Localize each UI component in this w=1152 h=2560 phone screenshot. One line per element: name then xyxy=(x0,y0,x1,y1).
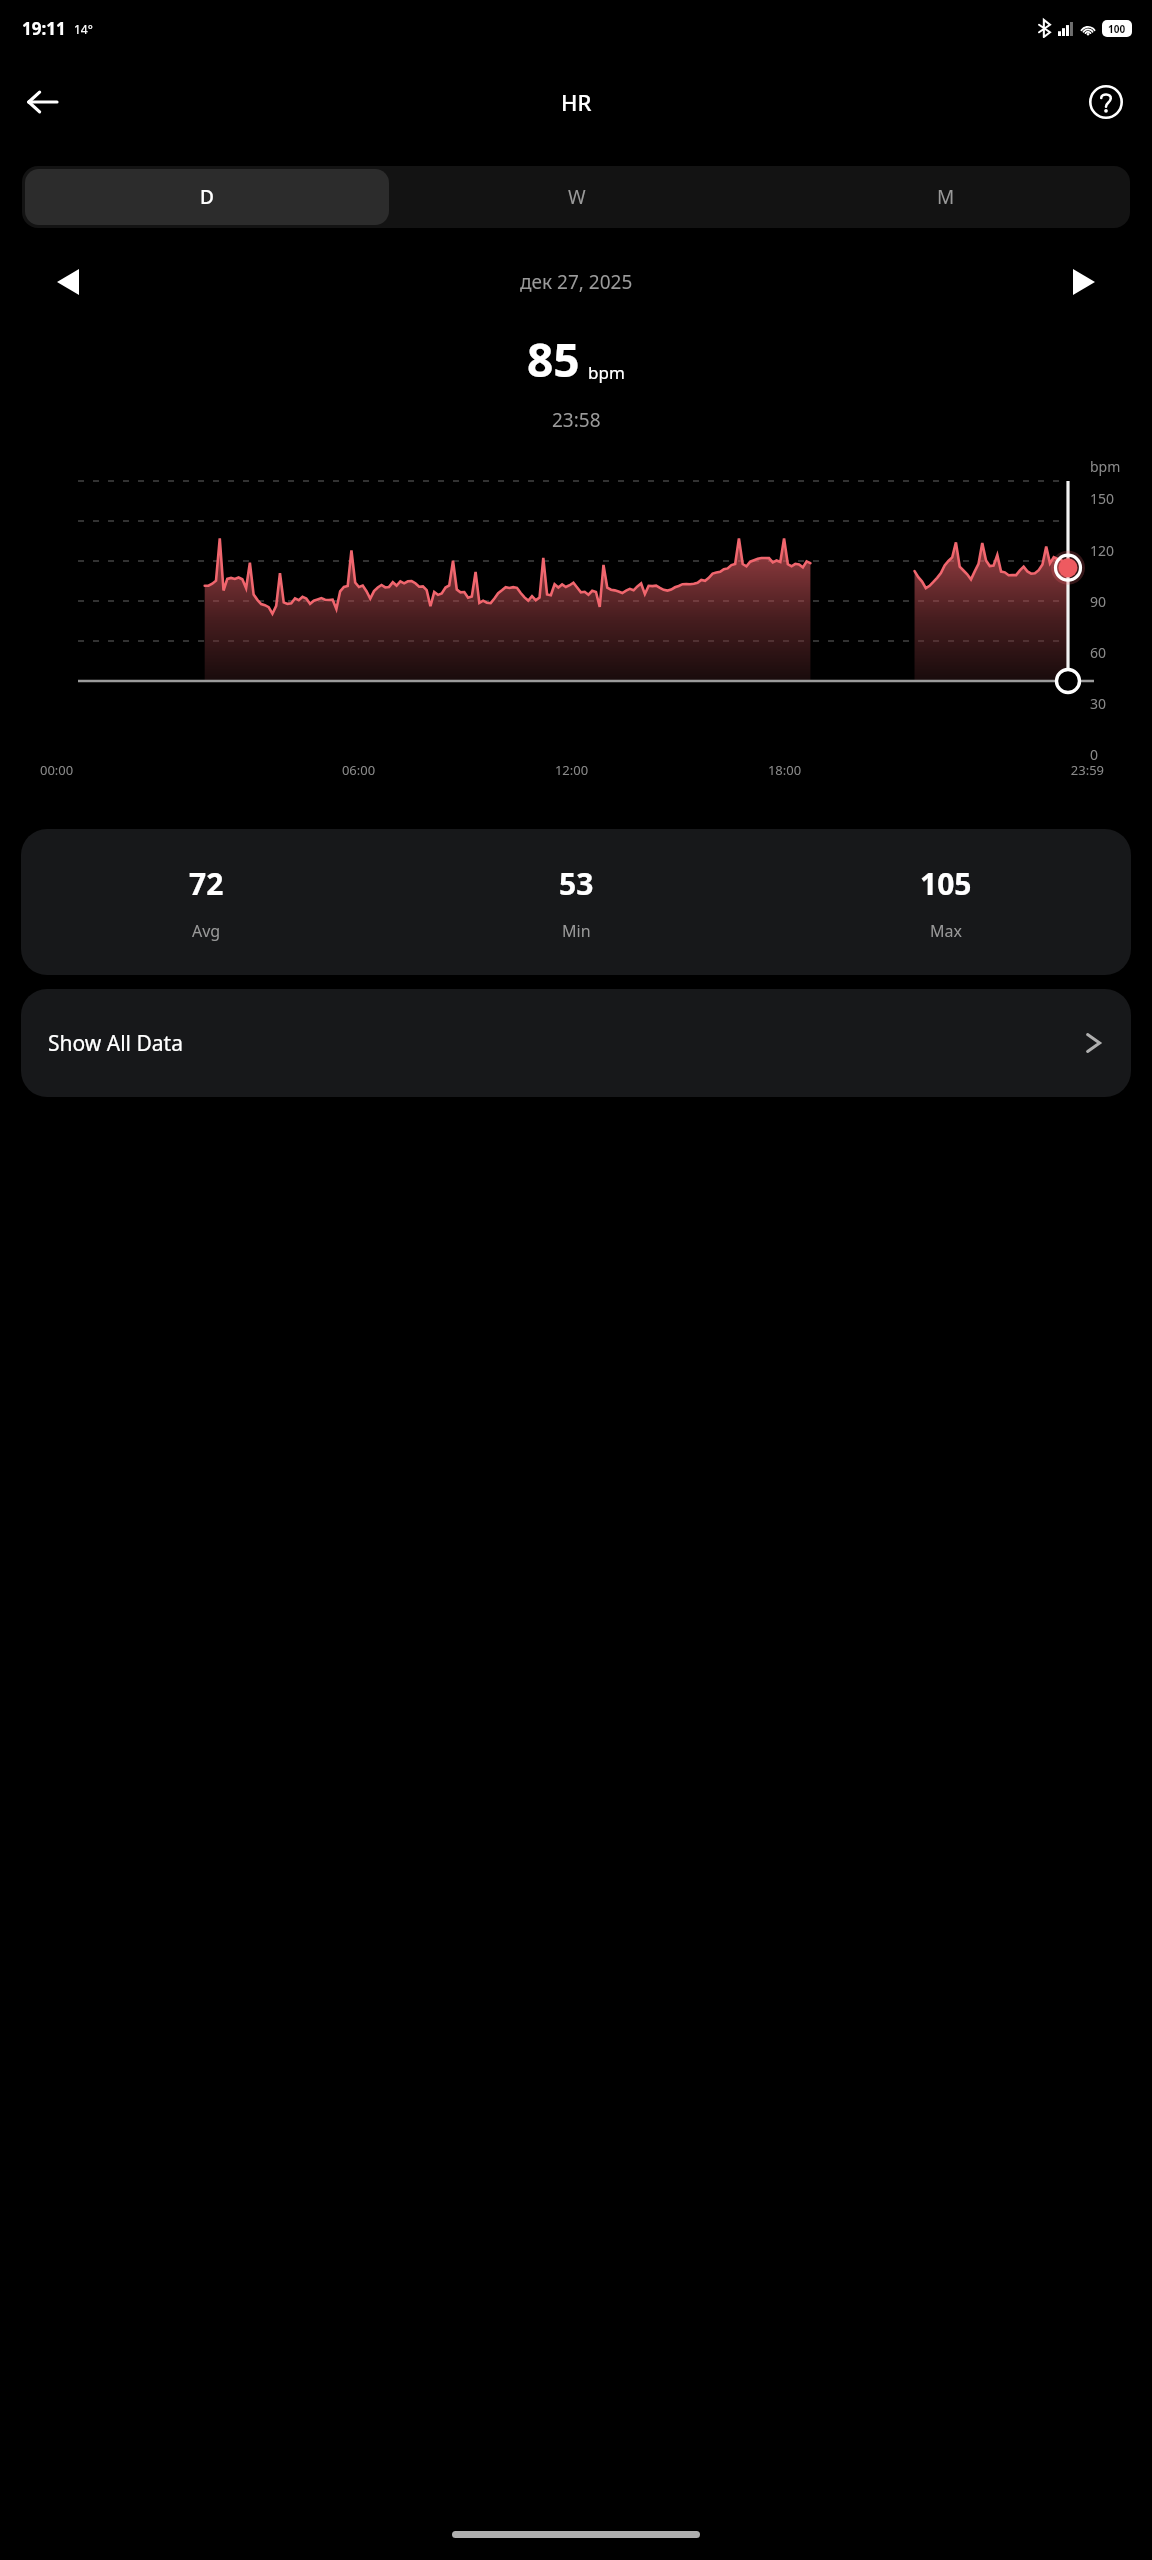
staticText: 00:00 xyxy=(40,761,252,779)
button[interactable]: Back xyxy=(10,70,74,134)
staticText: M xyxy=(937,184,955,210)
button[interactable]: M xyxy=(764,169,1127,225)
staticText: bpm xyxy=(588,361,625,384)
button[interactable]: 72 xyxy=(21,829,1131,975)
button[interactable]: D xyxy=(25,169,389,225)
staticText: Min xyxy=(562,920,591,942)
staticText: 0 xyxy=(1090,745,1099,764)
staticText: 06:00 xyxy=(252,761,465,779)
button[interactable]: Show All Data xyxy=(21,989,1131,1097)
button[interactable]: Previous day xyxy=(40,254,96,310)
staticText: Show All Data xyxy=(48,1029,183,1058)
staticText: Max xyxy=(930,920,962,942)
staticText: 30 xyxy=(1090,694,1107,713)
button[interactable]: W xyxy=(395,169,758,225)
staticText: 60 xyxy=(1090,643,1107,662)
staticText: 53 xyxy=(559,863,594,904)
staticText: HR xyxy=(561,87,592,117)
staticText: 90 xyxy=(1090,592,1107,611)
staticText: 105 xyxy=(920,863,972,904)
staticText: Avg xyxy=(192,920,221,942)
staticText: 12:00 xyxy=(465,761,678,779)
staticText: W xyxy=(568,184,586,210)
button[interactable]: Help xyxy=(1074,70,1138,134)
staticText: D xyxy=(200,184,214,210)
button[interactable]: Next day xyxy=(1056,254,1112,310)
staticText: 85 xyxy=(527,328,580,391)
staticText: bpm xyxy=(1090,457,1121,476)
staticText: 72 xyxy=(189,863,224,904)
staticText: 150 xyxy=(1090,489,1115,508)
staticText: 19:11 xyxy=(22,17,66,40)
staticText: 120 xyxy=(1090,541,1115,560)
staticText: 100 xyxy=(1108,22,1126,36)
staticText: 14° xyxy=(74,21,93,37)
staticText: 23:58 xyxy=(552,407,601,433)
staticText: 23:59 xyxy=(891,761,1104,779)
staticText: дек 27, 2025 xyxy=(520,269,633,295)
staticText: 18:00 xyxy=(678,761,891,779)
